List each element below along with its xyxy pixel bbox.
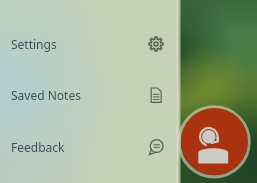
button[interactable]: Saved Notes — [0, 69, 178, 121]
other: Settings — [148, 36, 164, 52]
staticText: Settings — [11, 36, 57, 52]
button[interactable]: Settings — [0, 18, 178, 70]
other: Feedback — [148, 139, 164, 155]
button[interactable]: Contact support — [181, 108, 248, 175]
staticText: Feedback — [11, 139, 65, 155]
other: Saved Notes — [148, 87, 164, 103]
button[interactable]: Feedback — [0, 121, 178, 173]
staticText: Saved Notes — [11, 87, 81, 103]
